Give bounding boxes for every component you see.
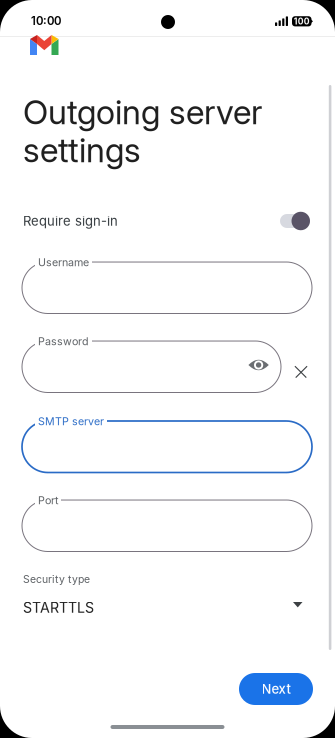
button[interactable]: Require sign-in [23,211,310,231]
staticText: Outgoing server [23,92,262,132]
button[interactable]: Security type [23,573,313,617]
button[interactable]: Clear password [294,365,307,378]
staticText: Username [38,256,89,269]
staticText: 100 [294,16,310,26]
button[interactable]: Password [22,335,281,392]
staticText: Require sign-in [23,213,118,229]
button[interactable]: SMTP server [22,415,312,472]
button[interactable]: Port [22,494,312,551]
staticText: SMTP server [38,415,104,428]
staticText: Security type [23,573,90,586]
button[interactable]: Next [239,673,313,705]
staticText: settings [23,130,141,170]
staticText: Port [38,494,58,507]
staticText: 10:00 [31,14,61,28]
button[interactable]: Username [22,256,312,313]
staticText: Password [38,335,89,348]
staticText: STARTTLS [23,599,94,616]
staticText: Next [261,681,290,697]
